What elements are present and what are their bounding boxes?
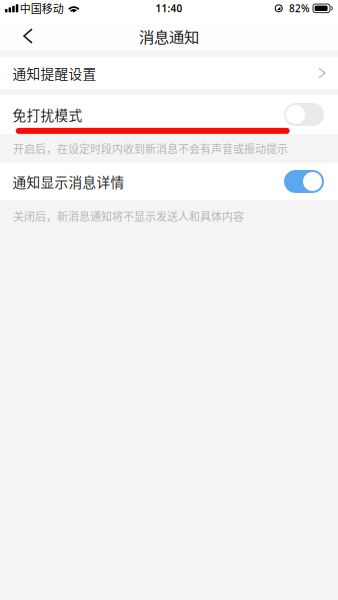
button[interactable]: 通知显示消息详情 <box>0 163 338 200</box>
staticText: 82% <box>289 1 310 15</box>
button[interactable]: 免打扰模式 <box>0 95 338 134</box>
staticText: 消息通知 <box>139 25 199 47</box>
staticText: 11:40 <box>155 1 182 15</box>
staticText: 中国移动 <box>20 0 64 16</box>
button[interactable]: 通知提醒设置 <box>0 57 338 89</box>
button[interactable]: Back <box>14 22 42 50</box>
staticText: 免打扰模式 <box>12 105 82 124</box>
staticText: 关闭后，新消息通知将不显示发送人和具体内容 <box>13 208 244 224</box>
staticText: 通知提醒设置 <box>12 63 96 83</box>
staticText: 通知显示消息详情 <box>12 172 124 191</box>
staticText: 开启后，在设定时段内收到新消息不会有声音或振动提示 <box>13 140 288 156</box>
